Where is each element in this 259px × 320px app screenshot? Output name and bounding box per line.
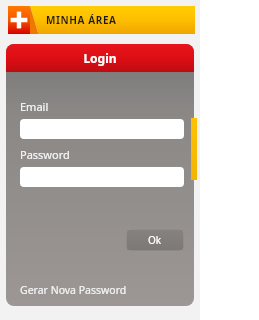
- button[interactable]: Gerar Nova Password: [6, 279, 194, 301]
- button[interactable]: MINHA ÁREA: [8, 6, 195, 34]
- staticText: MINHA ÁREA: [46, 13, 117, 27]
- button[interactable]: [20, 119, 184, 139]
- button[interactable]: [20, 167, 184, 187]
- staticText: Email: [20, 99, 49, 114]
- button[interactable]: Ok: [126, 229, 184, 251]
- staticText: Ok: [148, 233, 162, 247]
- staticText: Password: [20, 147, 70, 162]
- staticText: Login: [83, 50, 117, 66]
- staticText: Gerar Nova Password: [20, 283, 127, 297]
